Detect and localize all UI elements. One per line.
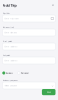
staticText: Trip title — [2, 12, 9, 14]
staticText: Save — [47, 91, 51, 93]
staticText: Start point — [2, 40, 12, 42]
staticText: Enter distance — [4, 31, 17, 34]
staticText: Enter trip name — [4, 17, 19, 20]
staticText: End point — [2, 54, 10, 56]
button[interactable]: Save — [42, 89, 55, 95]
staticText: Business purpose — [2, 79, 17, 81]
staticText: Enter address — [4, 59, 17, 62]
staticText: Enter address — [4, 45, 17, 48]
staticText: Business — [6, 72, 13, 74]
staticText: Select purpose — [4, 84, 17, 87]
staticText: Add Trip — [2, 3, 16, 8]
button[interactable]: Personal — [17, 71, 28, 75]
button[interactable]: Business — [2, 71, 13, 75]
staticText: ⌄ — [52, 84, 54, 87]
staticText: Personal — [21, 72, 28, 74]
staticText: ✕ — [52, 4, 54, 7]
staticText: Distance (mi) — [2, 26, 14, 28]
button[interactable]: Close — [50, 3, 55, 8]
